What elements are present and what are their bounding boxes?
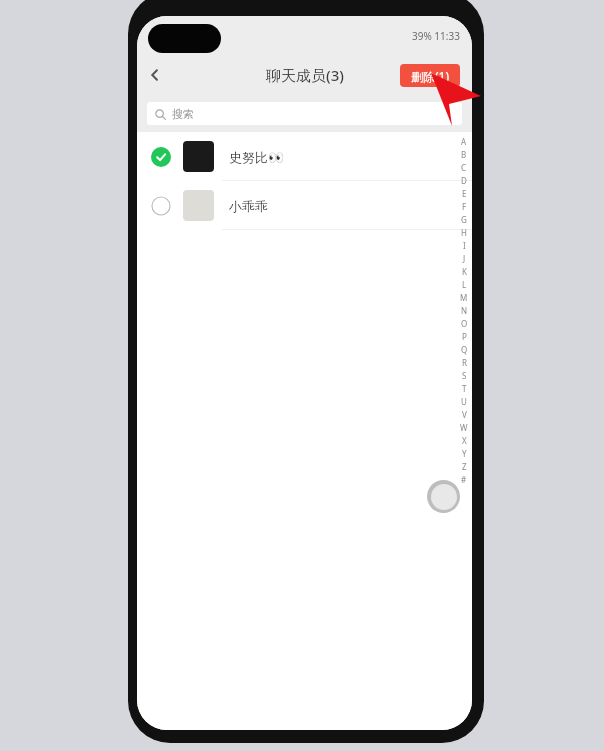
- staticText: I: [463, 240, 466, 253]
- staticText: P: [462, 331, 467, 344]
- staticText: #: [461, 474, 467, 487]
- staticText: L: [462, 279, 467, 292]
- staticText: N: [461, 305, 468, 318]
- button[interactable]: 搜索: [147, 102, 462, 125]
- staticText: Q: [461, 344, 468, 357]
- staticText: U: [461, 396, 467, 409]
- staticText: F: [462, 201, 467, 214]
- staticText: K: [462, 266, 467, 279]
- staticText: 删除(1): [411, 68, 450, 84]
- staticText: J: [463, 253, 466, 266]
- staticText: A: [461, 136, 467, 149]
- staticText: W: [460, 422, 468, 435]
- staticText: B: [461, 149, 467, 162]
- staticText: E: [462, 188, 467, 201]
- staticText: X: [462, 435, 467, 448]
- staticText: 聊天成员(3): [266, 65, 344, 85]
- staticText: M: [460, 292, 468, 305]
- staticText: 39% 11:33: [412, 29, 460, 43]
- staticText: 史努比👀: [229, 149, 285, 165]
- staticText: 小乖乖: [229, 198, 268, 214]
- button[interactable]: 小乖乖: [137, 181, 472, 230]
- button[interactable]: 史努比👀: [137, 132, 472, 181]
- staticText: S: [462, 370, 467, 383]
- staticText: Z: [462, 461, 467, 474]
- staticText: G: [461, 214, 467, 227]
- staticText: H: [461, 227, 467, 240]
- staticText: Y: [462, 448, 467, 461]
- staticText: O: [461, 318, 468, 331]
- staticText: C: [461, 162, 467, 175]
- staticText: V: [462, 409, 467, 422]
- button[interactable]: 删除(1): [400, 64, 460, 87]
- staticText: 搜索: [172, 107, 194, 121]
- staticText: T: [462, 383, 467, 396]
- staticText: D: [461, 175, 467, 188]
- button[interactable]: Back: [137, 57, 173, 93]
- staticText: R: [462, 357, 467, 370]
